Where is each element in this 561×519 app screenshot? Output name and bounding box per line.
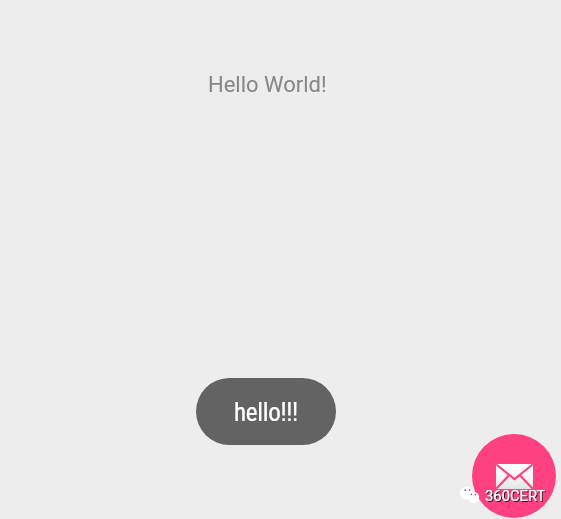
- button[interactable]: hello!!!: [196, 378, 336, 445]
- staticText: 360CERT: [486, 488, 547, 505]
- staticText: 360CERT: [486, 488, 547, 505]
- staticText: 360CERT: [485, 487, 546, 504]
- staticText: 360CERT: [486, 488, 547, 505]
- staticText: hello!!!: [234, 398, 298, 427]
- button[interactable]: Compose email: [472, 434, 556, 518]
- staticText: Hello World!: [208, 72, 327, 98]
